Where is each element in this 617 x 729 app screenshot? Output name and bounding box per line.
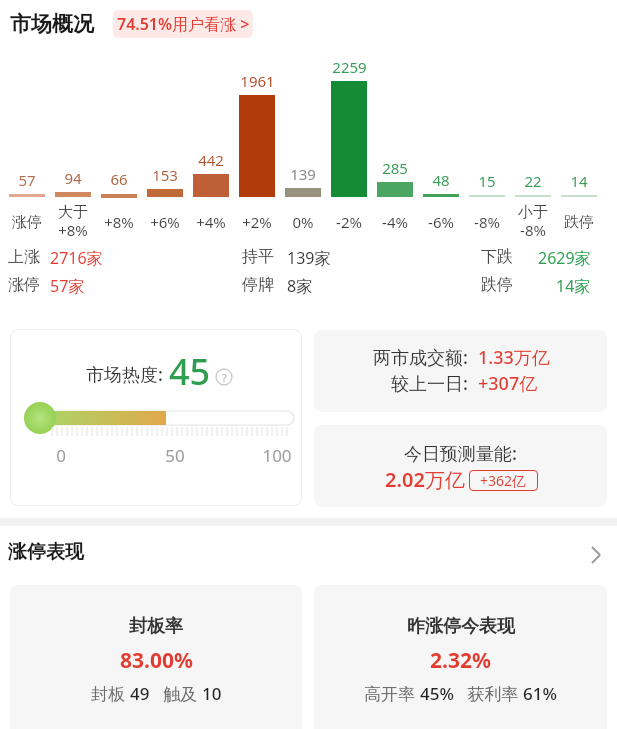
staticText: 2259 — [332, 57, 367, 77]
staticText: 50 — [165, 444, 185, 464]
staticText: 2716家 — [50, 247, 103, 269]
staticText: 45 — [169, 347, 211, 396]
staticText: +4% — [196, 212, 226, 232]
staticText: 小于 -8% — [518, 203, 548, 241]
staticText: 涨停 — [8, 275, 40, 295]
staticText: 昨涨停今表现 — [407, 615, 515, 637]
staticText: 100 — [262, 444, 292, 464]
button[interactable] — [10, 585, 302, 729]
staticText: 高开率 — [364, 682, 420, 704]
staticText: +307亿 — [478, 371, 538, 396]
staticText: 市场概况 — [10, 11, 94, 37]
staticText: 66 — [110, 169, 128, 189]
staticText: 2.32% — [430, 646, 491, 672]
staticText: -6% — [428, 212, 454, 232]
staticText: 139 — [290, 164, 316, 184]
staticText: 涨停 — [12, 213, 42, 232]
staticText: 市场热度: — [86, 362, 163, 387]
button[interactable] — [10, 329, 302, 506]
staticText: 48 — [432, 170, 450, 190]
staticText: 1.33万亿 — [478, 345, 550, 370]
staticText: 封板 — [91, 682, 130, 704]
staticText: +8% — [104, 212, 134, 232]
staticText: -2% — [336, 212, 362, 232]
staticText: 14 — [570, 171, 588, 191]
staticText: 45% — [420, 682, 454, 704]
staticText: 153 — [152, 165, 178, 185]
staticText: 2629家 — [538, 247, 591, 269]
staticText: 8家 — [287, 275, 313, 297]
staticText: 跌停 — [564, 213, 594, 232]
staticText: 22 — [524, 171, 542, 191]
staticText: 57家 — [50, 275, 85, 297]
staticText: 139家 — [287, 247, 331, 269]
staticText: 1961 — [240, 71, 275, 91]
staticText: 74.51%用户看涨 > — [117, 13, 250, 35]
staticText: 较上一日: — [391, 371, 468, 396]
staticText: 94 — [64, 168, 82, 188]
button[interactable] — [588, 545, 604, 565]
staticText: 封板率 — [129, 615, 183, 637]
staticText: 2.02万亿 — [385, 466, 465, 493]
staticText: 停牌 — [242, 275, 274, 295]
button[interactable] — [314, 425, 607, 507]
staticText: +2% — [242, 212, 272, 232]
staticText: -4% — [382, 212, 408, 232]
staticText: 49 — [130, 682, 150, 704]
staticText: 57 — [18, 170, 36, 190]
staticText: 持平 — [242, 247, 274, 267]
staticText: 触及 — [150, 682, 202, 704]
staticText: 442 — [198, 150, 224, 170]
staticText: 0% — [292, 212, 314, 232]
staticText: 10 — [202, 682, 222, 704]
staticText: -8% — [474, 212, 500, 232]
button[interactable]: 74.51%用户看涨 > — [113, 10, 253, 38]
staticText: 下跌 — [481, 247, 513, 267]
staticText: 0 — [56, 444, 66, 464]
staticText: +6% — [150, 212, 180, 232]
staticText: ? — [222, 370, 227, 385]
staticText: 15 — [478, 171, 496, 191]
staticText: 获利率 — [454, 682, 523, 704]
staticText: 285 — [382, 158, 408, 178]
staticText: 涨停表现 — [8, 540, 84, 564]
staticText: 上涨 — [8, 247, 40, 267]
staticText: 14家 — [556, 275, 591, 297]
staticText: 两市成交额: — [373, 345, 468, 370]
staticText: 大于 +8% — [58, 203, 88, 241]
staticText: 61% — [523, 682, 557, 704]
button[interactable] — [314, 585, 607, 729]
staticText: 跌停 — [481, 275, 513, 295]
staticText: 83.00% — [120, 646, 193, 672]
staticText: +362亿 — [480, 471, 527, 490]
staticText: 今日预测量能: — [404, 441, 517, 463]
button[interactable] — [314, 330, 607, 412]
